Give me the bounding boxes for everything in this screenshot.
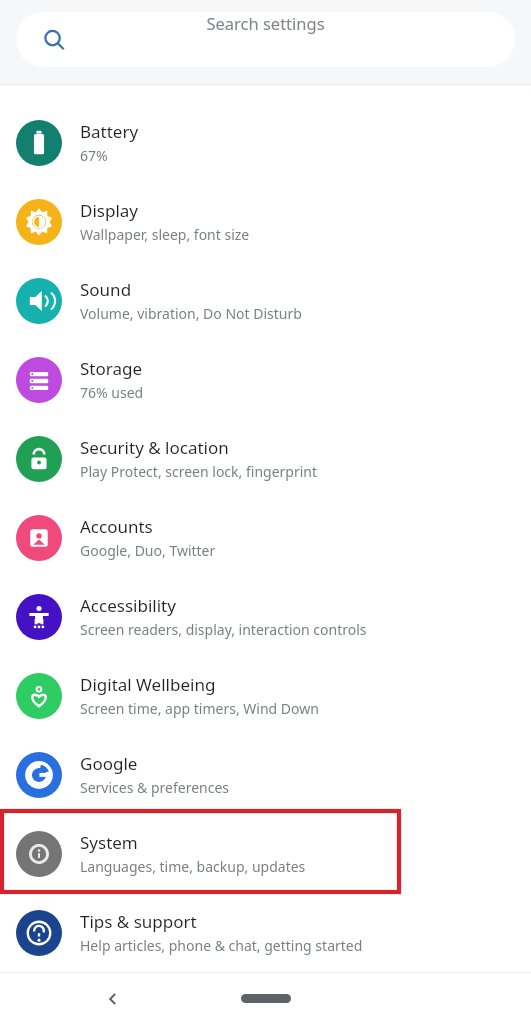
staticText: Services & preferences: [80, 778, 230, 797]
staticText: Languages, time, backup, updates: [80, 857, 306, 876]
staticText: Search settings: [206, 12, 325, 34]
staticText: Battery: [80, 120, 139, 143]
staticText: Screen readers, display, interaction con…: [80, 620, 367, 639]
button[interactable]: Tips & support: [0, 893, 531, 972]
staticText: Display: [80, 199, 138, 222]
staticText: Google, Duo, Twitter: [80, 541, 216, 560]
button[interactable]: Security & location: [0, 419, 531, 498]
staticText: Accessibility: [80, 594, 176, 617]
staticText: Digital Wellbeing: [80, 673, 216, 696]
staticText: Play Protect, screen lock, fingerprint: [80, 462, 318, 481]
staticText: Storage: [80, 357, 143, 380]
staticText: 76% used: [80, 383, 144, 402]
button[interactable]: Search settings: [16, 12, 515, 67]
button[interactable]: Display: [0, 182, 531, 261]
staticText: Help articles, phone & chat, getting sta…: [80, 936, 363, 955]
button[interactable]: Back: [92, 978, 134, 1020]
button[interactable]: Home: [241, 994, 291, 1003]
button[interactable]: Digital Wellbeing: [0, 656, 531, 735]
button[interactable]: Accessibility: [0, 577, 531, 656]
staticText: Accounts: [80, 515, 153, 538]
button[interactable]: Storage: [0, 340, 531, 419]
staticText: Tips & support: [80, 910, 197, 933]
button[interactable]: Sound: [0, 261, 531, 340]
staticText: 67%: [80, 146, 108, 165]
staticText: Google: [80, 752, 138, 775]
staticText: System: [80, 831, 138, 854]
staticText: Volume, vibration, Do Not Disturb: [80, 304, 302, 323]
staticText: Security & location: [80, 436, 229, 459]
button[interactable]: Battery: [0, 103, 531, 182]
staticText: Wallpaper, sleep, font size: [80, 225, 250, 244]
staticText: Sound: [80, 278, 132, 301]
staticText: Screen time, app timers, Wind Down: [80, 699, 319, 718]
button[interactable]: System: [0, 814, 531, 893]
button[interactable]: Accounts: [0, 498, 531, 577]
button[interactable]: Google: [0, 735, 531, 814]
